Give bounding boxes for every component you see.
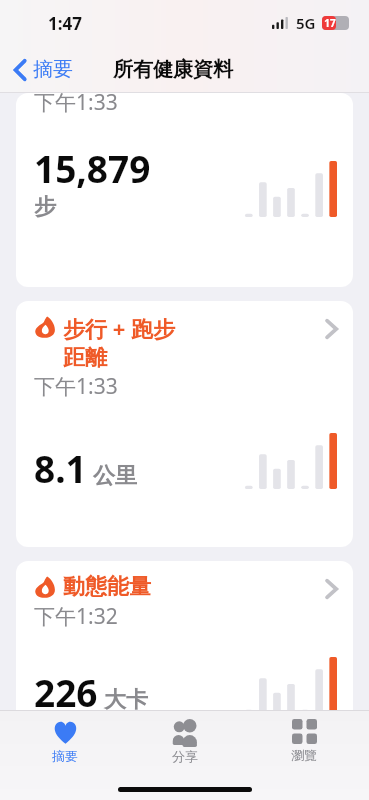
staticText: 226 [34, 667, 98, 717]
button[interactable]: 動態能量 [16, 561, 353, 761]
button[interactable]: 瀏覽 [249, 715, 359, 767]
staticText: 下午1:32 [34, 602, 118, 631]
staticText: 摘要 [33, 57, 73, 82]
staticText: 動態能量 [63, 573, 324, 601]
staticText: 1:47 [48, 12, 82, 35]
staticText: 瀏覽 [291, 747, 317, 763]
other: 摘要 [52, 718, 79, 745]
button[interactable]: 步行 + 跑步 距離 [16, 301, 353, 547]
button[interactable]: 步行 [16, 93, 353, 287]
staticText: 分享 [172, 748, 198, 764]
staticText: 摘要 [52, 748, 78, 764]
staticText: 5G [296, 13, 316, 33]
staticText: 8.1 [34, 443, 87, 493]
other: 瀏覽 [292, 719, 317, 744]
staticText: 步 [34, 193, 56, 221]
other: 分享 [168, 719, 202, 745]
staticText: 大卡 [104, 686, 148, 714]
staticText: 下午1:33 [34, 372, 118, 401]
button[interactable]: 摘要 [10, 53, 77, 86]
button[interactable]: 分享 [130, 715, 240, 768]
staticText: 步行 + 跑步 距離 [63, 313, 324, 371]
staticText: 所有健康資料 [113, 57, 233, 82]
staticText: 公里 [93, 462, 137, 490]
staticText: 15,879 [34, 143, 151, 193]
staticText: 17 [323, 16, 337, 30]
staticText: 下午1:33 [34, 93, 118, 117]
button[interactable]: 摘要 [10, 714, 120, 768]
